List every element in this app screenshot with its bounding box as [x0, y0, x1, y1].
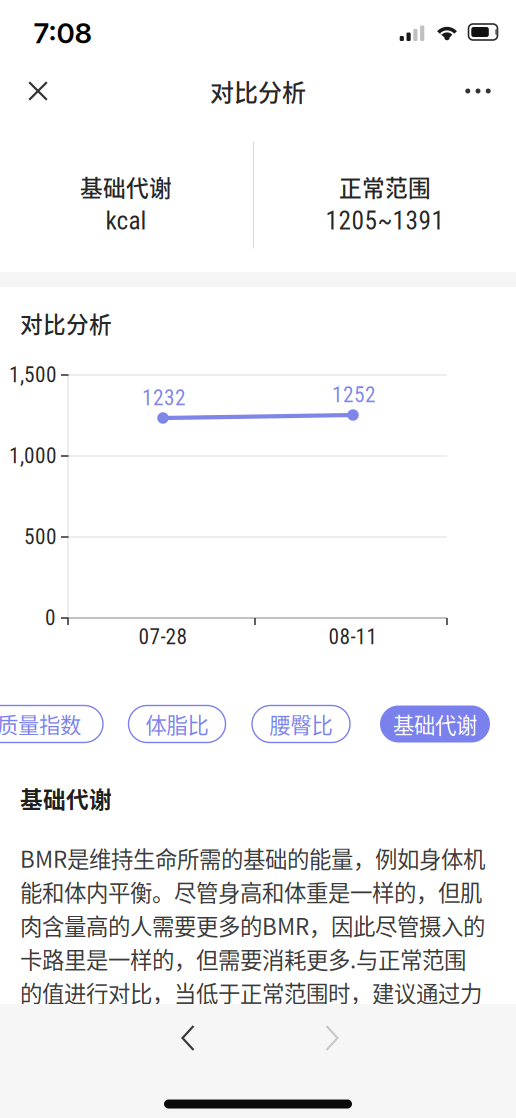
- button[interactable]: Forward: [291, 1006, 369, 1070]
- button[interactable]: More options: [446, 65, 509, 117]
- staticText: 卡路里是一样的，但需要消耗更多.与正常范围: [20, 943, 466, 975]
- button[interactable]: 腰臀比: [252, 705, 350, 742]
- staticText: 体脂比: [145, 709, 208, 739]
- staticText: 腰臀比: [269, 709, 332, 739]
- button[interactable]: Close: [9, 65, 67, 117]
- button[interactable]: Back: [151, 1006, 229, 1070]
- staticText: 7:08: [33, 16, 92, 50]
- staticText: 1232: [142, 385, 186, 410]
- staticText: 1,000: [9, 443, 57, 468]
- staticText: 08-11: [328, 624, 377, 649]
- staticText: 0: [45, 605, 56, 630]
- staticText: 的值进行对比，当低于正常范围时，建议通过力: [20, 976, 482, 1009]
- staticText: 对比分析: [20, 307, 112, 339]
- staticText: 500: [24, 524, 57, 549]
- staticText: 对比分析: [210, 74, 306, 108]
- staticText: 能和体内平衡。尽管身高和体重是一样的，但肌: [20, 875, 482, 908]
- staticText: 基础代谢: [80, 170, 172, 203]
- staticText: 基础代谢: [393, 709, 477, 739]
- staticText: 肉含量高的人需要更多的BMR，因此尽管摄入的: [20, 909, 485, 941]
- staticText: 1205~1391: [325, 206, 444, 236]
- staticText: 1,500: [9, 362, 57, 387]
- staticText: kcal: [105, 206, 146, 236]
- staticText: BMR是维持生命所需的基础的能量，例如身体机: [20, 842, 485, 874]
- staticText: 正常范围: [339, 170, 431, 203]
- button[interactable]: 身体质量指数: [0, 705, 103, 742]
- staticText: 07-28: [138, 624, 187, 649]
- staticText: 身体质量指数: [0, 709, 81, 739]
- button[interactable]: 基础代谢: [380, 705, 490, 742]
- staticText: 1252: [332, 382, 376, 407]
- staticText: 基础代谢: [20, 782, 112, 814]
- button[interactable]: 体脂比: [128, 705, 225, 742]
